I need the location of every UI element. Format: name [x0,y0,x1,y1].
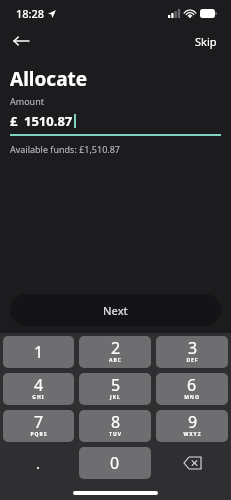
staticText: 4 [34,374,44,396]
staticText: 8 [111,411,121,433]
staticText: 5 [111,374,121,396]
button[interactable]: 7 [3,410,74,442]
staticText: Available funds: £1,510.87 [10,143,121,155]
staticText: PQRS [30,431,48,438]
staticText: 1510.87 [24,112,73,130]
button[interactable]: 4 [3,373,74,405]
button[interactable]: . [3,447,74,479]
button[interactable]: 2 [79,336,151,368]
button[interactable]: 6 [156,373,228,405]
staticText: 7 [34,411,44,433]
staticText: ABC [109,357,122,364]
staticText: £ [10,112,18,130]
staticText: DEF [186,357,199,364]
staticText: 18:28 [16,6,45,21]
staticText: 0 [110,452,120,474]
button[interactable]: 0 [79,447,151,479]
staticText: 2 [111,337,121,359]
staticText: Next [103,303,128,318]
button[interactable]: Next [10,294,221,326]
staticText: 6 [187,374,197,396]
button[interactable]: Back [6,26,36,56]
button[interactable]: Backspace [156,447,228,479]
staticText: 1 [34,341,44,363]
staticText: . [36,453,41,473]
button[interactable]: 8 [79,410,151,442]
staticText: 9 [188,411,198,433]
staticText: MNO [184,394,200,401]
staticText: Amount [10,95,44,107]
button[interactable]: 3 [156,336,228,368]
button[interactable]: 1 [3,336,74,368]
button[interactable]: 5 [79,373,151,405]
staticText: TUV [109,431,122,438]
staticText: JKL [110,394,121,401]
staticText: WXYZ [183,431,202,438]
button[interactable]: Skip [189,30,223,53]
button[interactable]: 9 [156,410,228,442]
staticText: Allocate [10,66,88,92]
staticText: GHI [32,394,45,401]
staticText: Skip [195,34,217,49]
staticText: 3 [188,337,198,359]
